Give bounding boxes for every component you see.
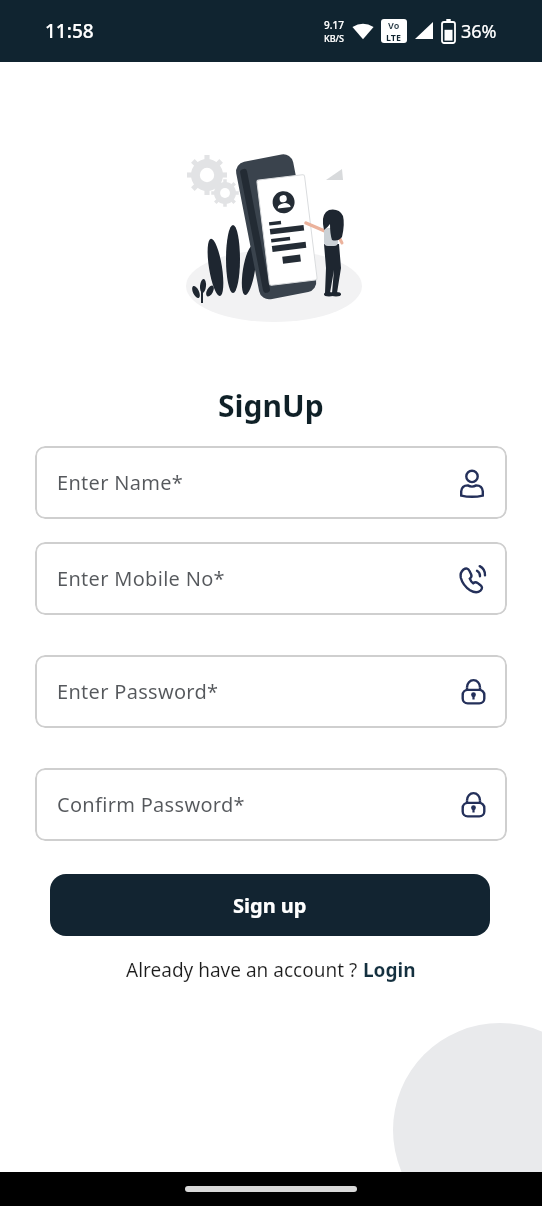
staticText: LTE: [386, 31, 402, 43]
button[interactable]: Enter Name*: [35, 446, 507, 519]
staticText: Already have an account ?: [126, 957, 363, 983]
staticText: 36%: [461, 19, 497, 44]
button[interactable]: Sign up: [50, 874, 490, 936]
staticText: SignUp: [218, 385, 324, 426]
staticText: 9.17: [324, 18, 344, 32]
button[interactable]: Confirm Password*: [35, 768, 507, 841]
staticText: Confirm Password*: [57, 791, 245, 818]
staticText: Enter Mobile No*: [57, 565, 225, 592]
button[interactable]: Enter Mobile No*: [35, 542, 507, 615]
button[interactable]: Enter Password*: [35, 655, 507, 728]
button[interactable]: Login: [363, 957, 416, 983]
staticText: 11:58: [45, 18, 94, 44]
staticText: Login: [363, 957, 416, 983]
staticText: Enter Password*: [57, 678, 219, 705]
staticText: Sign up: [233, 892, 307, 919]
staticText: Enter Name*: [57, 469, 184, 496]
staticText: Vo: [388, 19, 400, 31]
staticText: KB/S: [324, 32, 344, 44]
